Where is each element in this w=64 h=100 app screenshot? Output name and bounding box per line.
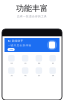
staticText: 扫描 bbox=[10, 62, 12, 64]
staticText: 功能丰富 bbox=[16, 3, 48, 13]
button[interactable]: 文档 bbox=[4, 67, 18, 76]
button[interactable]: 翻译 bbox=[32, 55, 46, 64]
button[interactable]: 识别 bbox=[18, 55, 32, 64]
staticText: 立即体验 bbox=[9, 49, 13, 50]
button[interactable]: 更多 bbox=[46, 55, 60, 64]
button[interactable]: 扫描 bbox=[4, 55, 18, 64]
staticText: 文档 bbox=[10, 75, 12, 76]
button[interactable]: AI 智能助手 bbox=[4, 38, 59, 52]
button[interactable]: 表格 bbox=[18, 67, 32, 76]
staticText: 总有一款适合你的工具 bbox=[17, 15, 47, 18]
staticText: 识别 bbox=[24, 62, 26, 64]
button[interactable]: 图片 bbox=[32, 67, 46, 76]
staticText: 一键开启全新体验 bbox=[7, 44, 31, 47]
staticText: 翻译 bbox=[38, 62, 40, 64]
staticText: 更多 bbox=[52, 62, 54, 64]
staticText: 表格 bbox=[24, 75, 26, 76]
staticText: AI 智能助手 bbox=[7, 39, 23, 43]
button[interactable]: 收藏 bbox=[46, 67, 60, 76]
staticText: 收藏 bbox=[52, 75, 54, 76]
